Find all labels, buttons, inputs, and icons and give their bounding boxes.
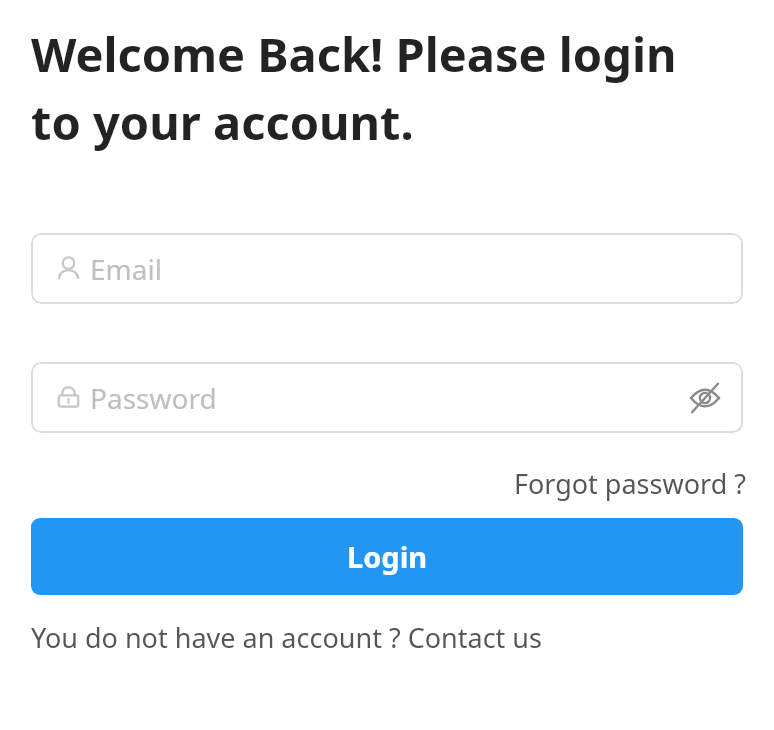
- staticText: Login: [347, 537, 428, 576]
- staticText: Email: [90, 250, 162, 288]
- staticText: Password: [90, 379, 217, 417]
- staticText: Welcome Back! Please login to your accou…: [31, 22, 677, 153]
- button[interactable]: Forgot password ?: [511, 461, 748, 506]
- button[interactable]: Login: [31, 518, 743, 595]
- button[interactable]: Email: [31, 233, 743, 304]
- button[interactable]: You do not have an account ? Contact us: [31, 617, 542, 658]
- button[interactable]: Password: [31, 362, 743, 433]
- button[interactable]: Show password: [689, 382, 721, 414]
